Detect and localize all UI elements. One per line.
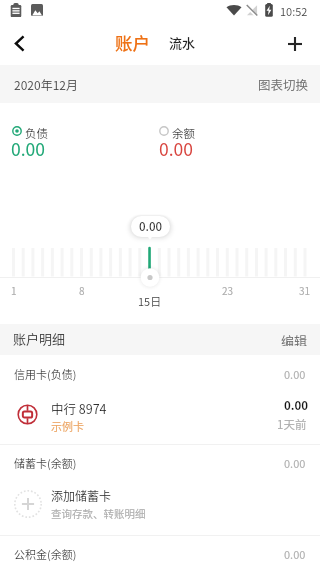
staticText: 图表切换 <box>258 75 309 93</box>
staticText: 储蓄卡(余额) <box>14 455 77 471</box>
button[interactable]: Back <box>0 22 40 65</box>
staticText: 0.00 <box>11 136 46 161</box>
staticText: 中行 8974 <box>51 399 107 417</box>
staticText: 查询存款、转账明细 <box>51 506 146 521</box>
staticText: 公积金(余额) <box>14 546 77 562</box>
staticText: 0.00 <box>284 546 306 562</box>
button[interactable]: 负债 <box>0 103 150 161</box>
staticText: 0.00 <box>159 136 194 161</box>
button[interactable]: 余额 <box>147 103 297 161</box>
staticText: 账户 <box>115 30 150 55</box>
staticText: 0.00 <box>284 366 306 382</box>
staticText: 余额 <box>172 125 195 142</box>
staticText: 流水 <box>169 33 196 52</box>
staticText: 10:52 <box>280 3 308 19</box>
button[interactable]: 中行 8974 <box>0 386 320 444</box>
staticText: 2020年12月 <box>14 76 78 93</box>
button[interactable]: Add <box>275 22 315 65</box>
staticText: 信用卡(负债) <box>14 366 77 382</box>
staticText: 0.00 <box>139 218 163 235</box>
staticText: 8 <box>79 283 85 296</box>
staticText: 添加储蓄卡 <box>51 487 112 504</box>
staticText: 0.00 <box>284 397 309 414</box>
staticText: 1天前 <box>277 416 307 433</box>
staticText: 31 <box>299 283 311 296</box>
staticText: 23 <box>222 283 234 296</box>
staticText: 编辑 <box>281 331 308 346</box>
staticText: 0.00 <box>284 455 306 471</box>
staticText: 15日 <box>138 293 162 307</box>
staticText: 负债 <box>25 125 48 142</box>
staticText: 1 <box>11 283 17 296</box>
button[interactable]: 编辑 <box>269 323 320 354</box>
button[interactable]: 添加储蓄卡 <box>0 476 320 534</box>
staticText: 账户明细 <box>13 329 66 348</box>
button[interactable]: 图表切换 <box>247 66 320 102</box>
staticText: 示例卡 <box>51 418 84 434</box>
button[interactable]: 账户 <box>111 27 154 58</box>
button[interactable]: 流水 <box>165 30 200 55</box>
